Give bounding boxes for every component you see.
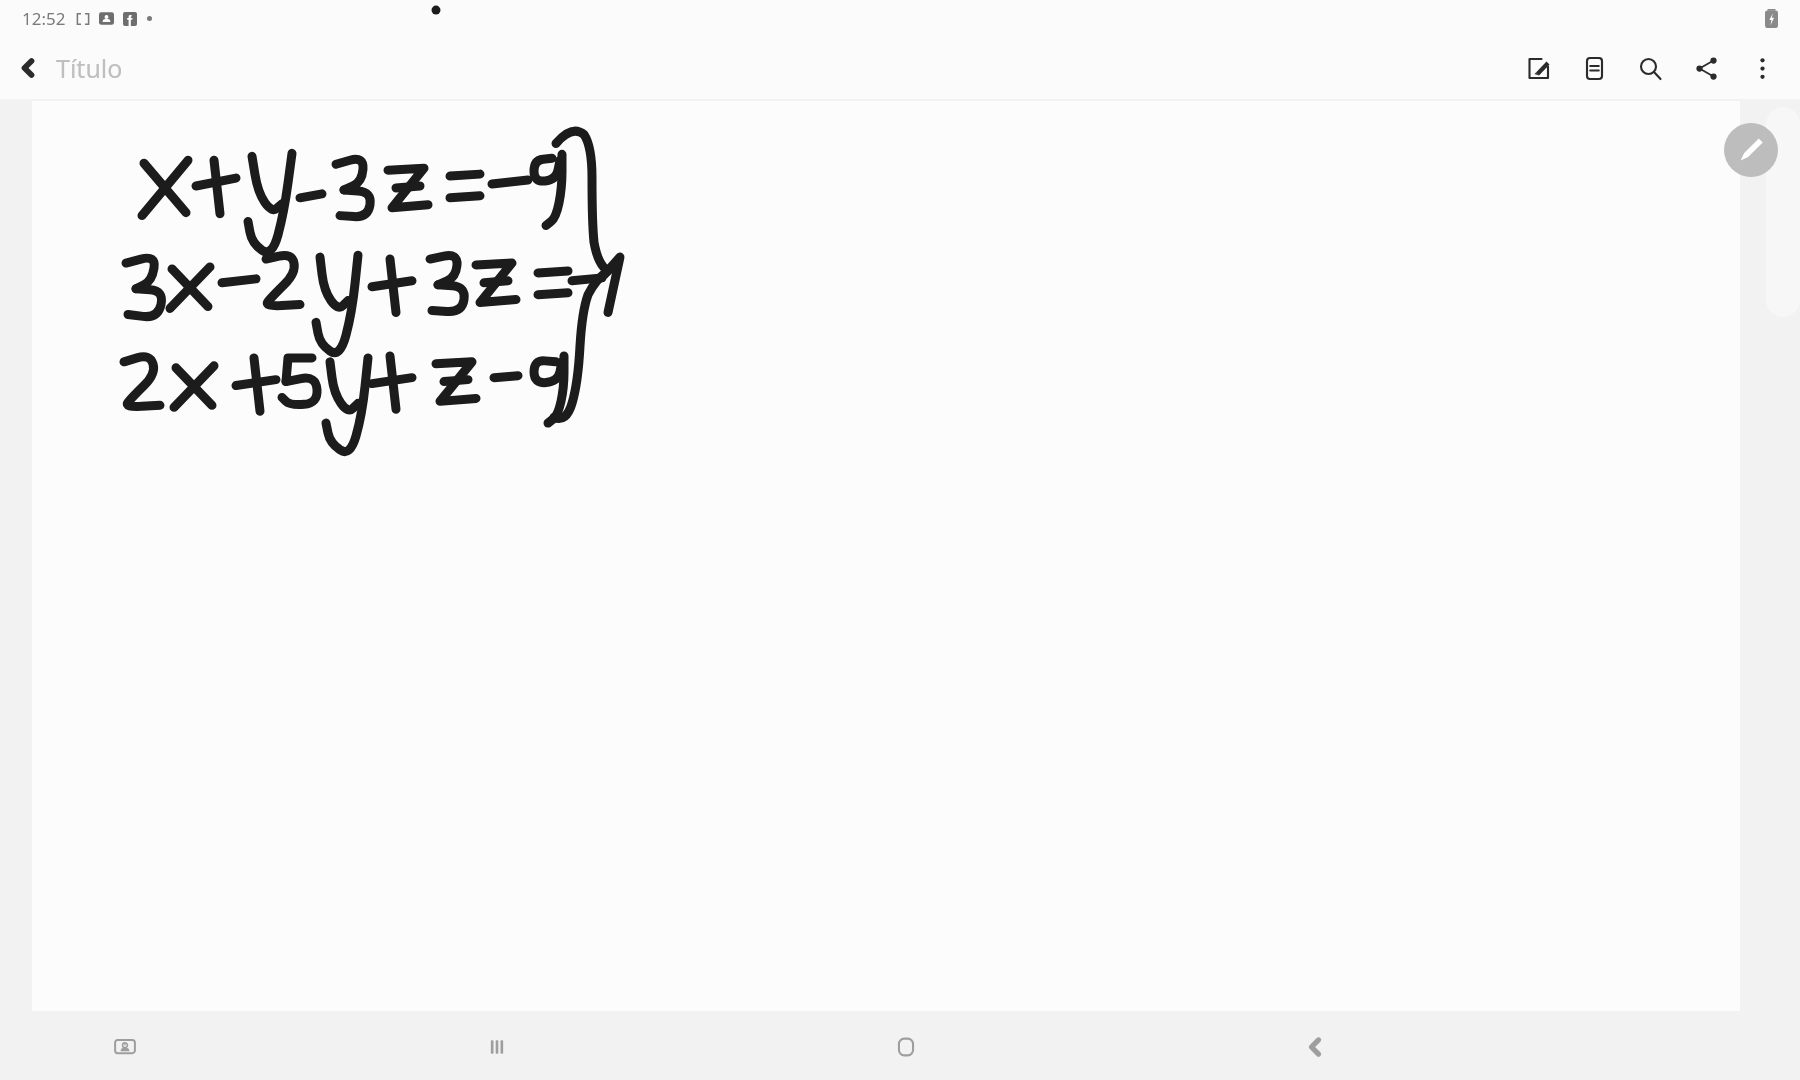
button[interactable]: Edit note — [1510, 40, 1566, 96]
staticText: 12:52 — [22, 7, 66, 30]
button[interactable]: Share — [1678, 40, 1734, 96]
button[interactable]: Título — [56, 51, 123, 85]
button[interactable] — [32, 101, 1740, 1011]
button[interactable]: Pen tool — [1724, 123, 1778, 177]
button[interactable]: Home — [877, 1018, 935, 1076]
button[interactable]: Back — [0, 40, 56, 96]
button[interactable]: More options — [1734, 40, 1790, 96]
button[interactable]: Search — [1622, 40, 1678, 96]
button[interactable]: Back — [1286, 1018, 1344, 1076]
button[interactable]: Screenshot — [96, 1018, 154, 1076]
button[interactable]: Note list — [1566, 40, 1622, 96]
button[interactable]: Recent apps — [468, 1018, 526, 1076]
